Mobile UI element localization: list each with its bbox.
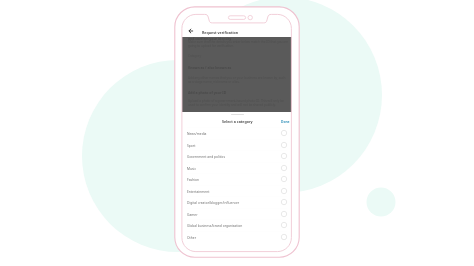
staticText: Music (187, 166, 281, 170)
button[interactable]: Other (182, 231, 292, 243)
staticText: Sport (187, 143, 281, 147)
staticText: Request verification (202, 30, 239, 35)
staticText: Government and politics (187, 154, 281, 158)
button[interactable]: News/media (182, 127, 292, 139)
staticText: Known as / also known as (188, 65, 232, 70)
staticText: Gamer (187, 212, 281, 216)
button[interactable]: Entertainment (182, 185, 292, 197)
button[interactable]: Gamer (182, 208, 292, 220)
staticText: Global business/brand organisation (187, 223, 281, 227)
button[interactable]: Government and politics (182, 150, 292, 162)
button[interactable]: Digital creator/blogger/influencer (182, 196, 292, 208)
button[interactable]: Fashion (182, 173, 292, 185)
staticText: Digital creator/blogger/influencer (187, 200, 281, 204)
button[interactable]: Done (277, 115, 292, 127)
staticText: Add a photo of your ID (188, 90, 227, 95)
staticText: News/media (187, 131, 281, 135)
button[interactable]: Sport (182, 139, 292, 151)
staticText: Fashion (187, 177, 281, 181)
staticText: Done (281, 119, 290, 123)
staticText: Other (187, 235, 281, 239)
button[interactable]: Music (182, 162, 292, 174)
staticText: Entertainment (187, 189, 281, 193)
button[interactable]: Global business/brand organisation (182, 219, 292, 231)
staticText: Select a category (222, 119, 253, 124)
staticText: and confirm your identity (188, 36, 232, 41)
button[interactable]: Back (187, 27, 195, 35)
